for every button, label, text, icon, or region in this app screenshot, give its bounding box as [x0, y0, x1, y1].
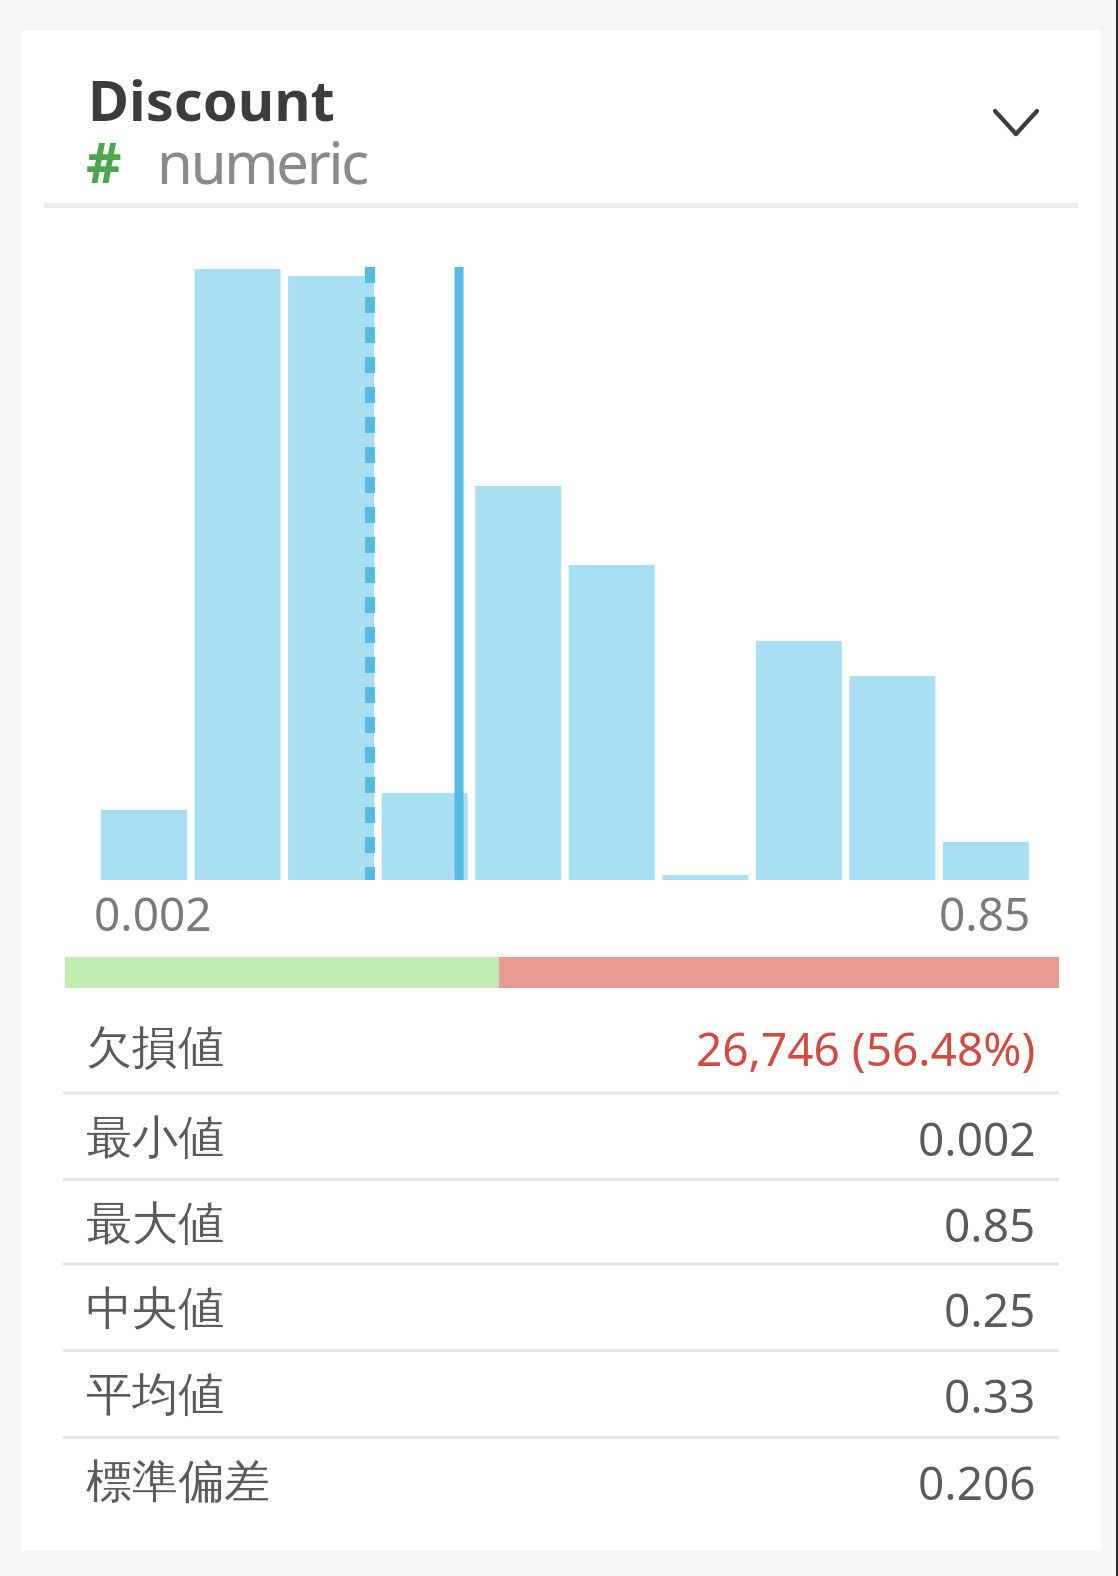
staticText: 最小値 — [86, 1109, 224, 1167]
staticText: numeric — [157, 122, 367, 201]
staticText: 平均値 — [86, 1366, 224, 1424]
button[interactable] — [974, 88, 1058, 156]
staticText: 欠損値 — [86, 1019, 224, 1077]
staticText: 0.85 — [939, 882, 1031, 945]
staticText: 0.002 — [918, 1107, 1036, 1170]
staticText: 0.002 — [94, 882, 212, 945]
staticText: 中央値 — [86, 1280, 224, 1338]
staticText: 0.33 — [944, 1364, 1036, 1427]
staticText: Discount — [88, 61, 335, 137]
staticText: # — [86, 124, 122, 199]
staticText: 0.25 — [944, 1278, 1036, 1341]
staticText: 0.85 — [944, 1193, 1036, 1256]
staticText: 標準偏差 — [86, 1453, 270, 1511]
staticText: 最大値 — [86, 1195, 224, 1253]
staticText: 0.206 — [918, 1451, 1036, 1514]
staticText: 26,746 (56.48%) — [696, 1017, 1036, 1080]
